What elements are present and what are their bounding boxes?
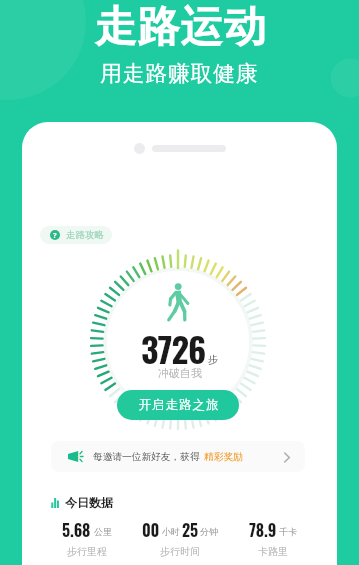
staticText: 开启走路之旅 — [138, 397, 219, 413]
staticText: 千卡 — [279, 526, 297, 537]
staticText: 5.68 — [62, 518, 91, 542]
button[interactable]: 每邀请一位新好友，获得 — [51, 441, 305, 472]
staticText: 步行里程 — [67, 545, 107, 558]
staticText: 走路攻略 — [66, 229, 104, 241]
staticText: 00 — [142, 518, 160, 542]
staticText: 每邀请一位新好友，获得 — [93, 451, 200, 463]
staticText: 精彩奖励 — [204, 451, 243, 463]
staticText: ? — [53, 230, 57, 240]
staticText: 走路运动 — [94, 1, 266, 54]
staticText: 分钟 — [200, 526, 218, 537]
staticText: 步行时间 — [160, 545, 200, 558]
button[interactable]: 开启走路之旅 — [117, 390, 239, 420]
staticText: 78.9 — [249, 518, 277, 542]
staticText: 今日数据 — [65, 495, 113, 510]
staticText: 3726 — [141, 323, 206, 373]
button[interactable]: ? — [40, 226, 112, 244]
staticText: 公里 — [94, 526, 112, 537]
staticText: 25 — [182, 518, 198, 542]
staticText: 卡路里 — [258, 545, 288, 558]
staticText: 步 — [208, 353, 218, 366]
staticText: 用走路赚取健康 — [100, 60, 259, 88]
staticText: 小时 — [162, 526, 180, 537]
staticText: 冲破自我 — [158, 366, 202, 380]
